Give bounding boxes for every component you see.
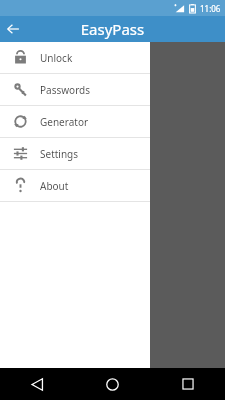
button[interactable]: About bbox=[0, 170, 150, 201]
button[interactable]: Settings bbox=[0, 138, 150, 169]
button[interactable]: Passwords bbox=[0, 74, 150, 105]
staticText: Unlock bbox=[40, 51, 73, 65]
staticText: EasyPass bbox=[26, 19, 199, 39]
staticText: About bbox=[40, 179, 69, 193]
button[interactable]: Recents bbox=[150, 368, 225, 400]
staticText: my account bbox=[120, 118, 169, 130]
staticText: Passwords bbox=[40, 83, 91, 97]
staticText: Generator bbox=[40, 115, 89, 129]
button[interactable]: Unlock bbox=[0, 42, 150, 73]
staticText: 11:06 bbox=[200, 3, 221, 14]
button[interactable]: Generator bbox=[0, 106, 150, 137]
button[interactable]: Back bbox=[0, 368, 75, 400]
button[interactable]: Home bbox=[75, 368, 150, 400]
button[interactable]: Back bbox=[0, 16, 26, 42]
staticText: Settings bbox=[40, 147, 79, 161]
